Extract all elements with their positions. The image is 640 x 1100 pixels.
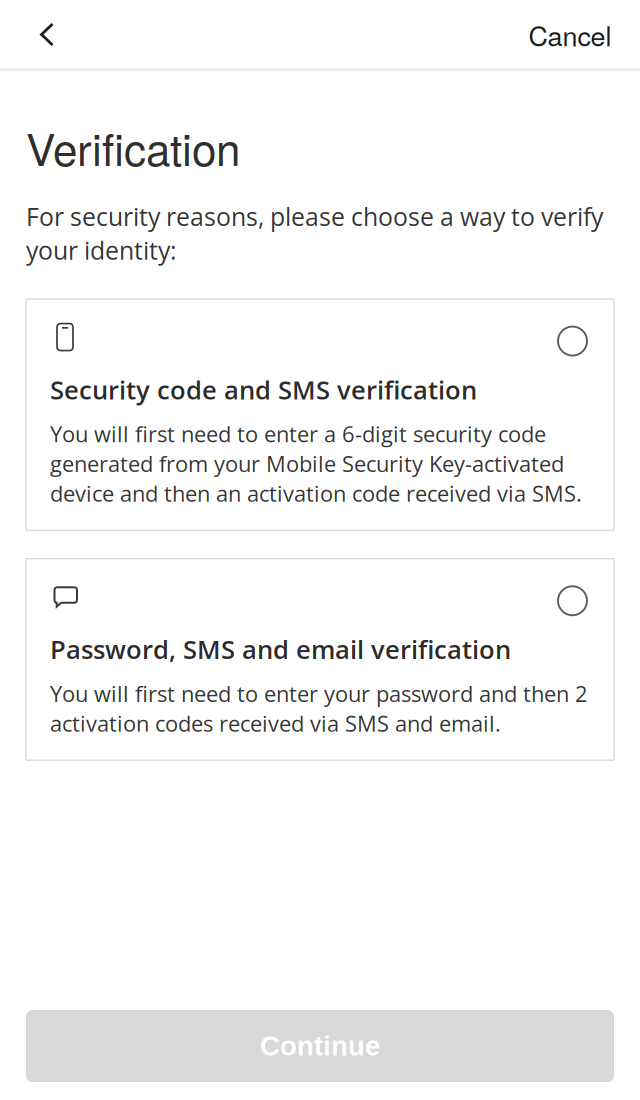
- staticText: For security reasons, please choose a wa…: [26, 199, 603, 267]
- staticText: Cancel: [528, 15, 611, 54]
- staticText: You will first need to enter your passwo…: [50, 679, 588, 738]
- button[interactable]: Security code and SMS verification: [26, 299, 614, 530]
- staticText: Password, SMS and email verification: [50, 632, 511, 667]
- staticText: Verification: [26, 115, 240, 178]
- button[interactable]: Password, SMS and email verification: [26, 559, 614, 760]
- staticText: Security code and SMS verification: [50, 372, 477, 407]
- staticText: Continue: [260, 1031, 380, 1061]
- staticText: You will first need to enter a 6-digit s…: [50, 419, 582, 508]
- button[interactable]: Continue: [26, 1010, 614, 1082]
- button[interactable]: Cancel: [508, 0, 640, 75]
- button[interactable]: Back: [0, 0, 74, 68]
